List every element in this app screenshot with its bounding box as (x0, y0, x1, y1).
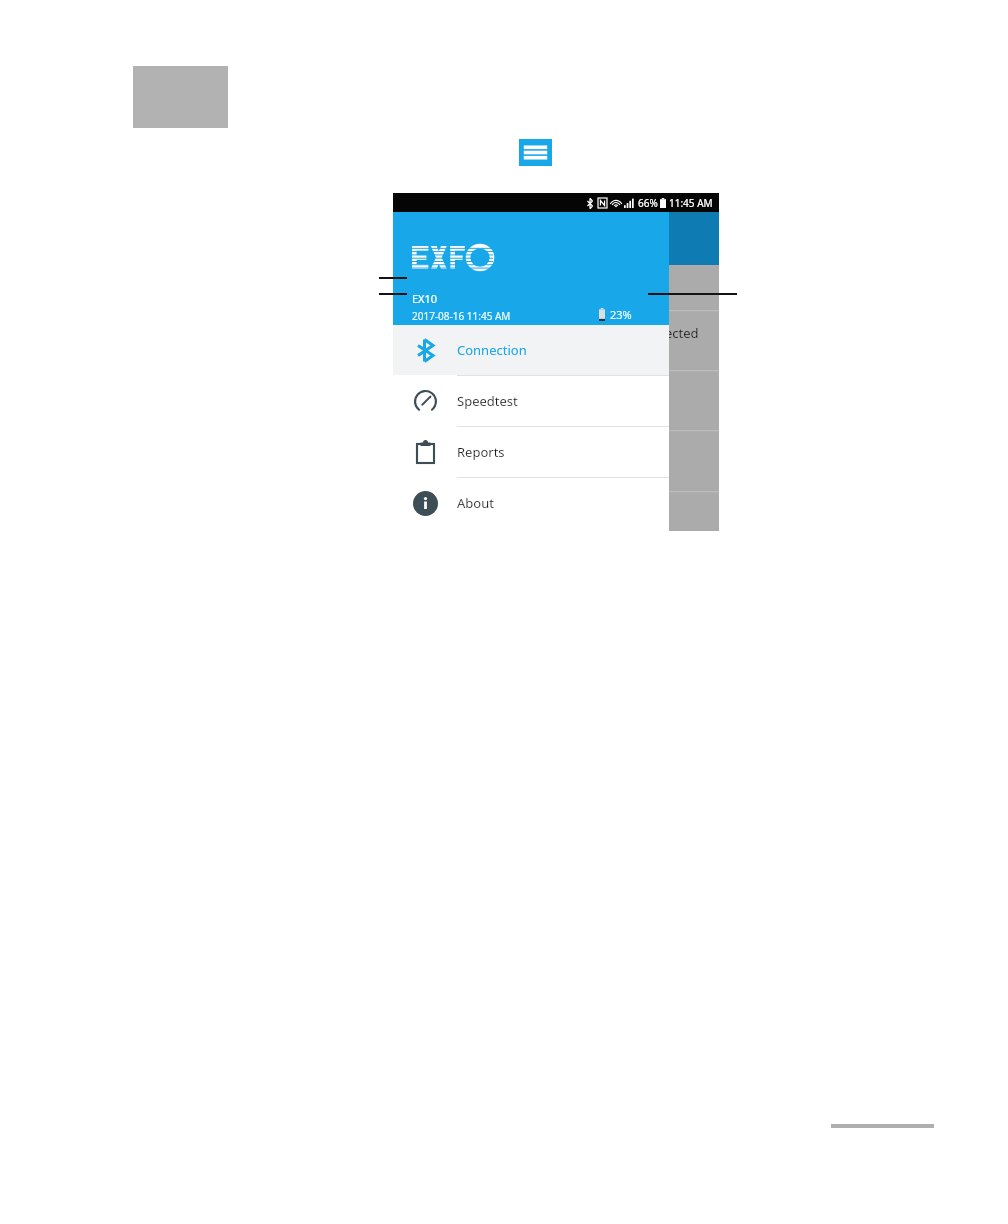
staticText: 11:45 AM (669, 196, 713, 210)
button[interactable]: Connection (393, 325, 669, 375)
staticText: Speedtest (457, 392, 518, 410)
staticText: 2017-08-16 11:45 AM (412, 309, 511, 323)
button[interactable]: Reports (393, 427, 669, 477)
staticText: ected (665, 324, 699, 342)
button[interactable]: About (393, 478, 669, 528)
staticText: EX10 (412, 291, 438, 306)
staticText: About (457, 494, 494, 512)
button[interactable]: Open navigation menu (519, 139, 552, 166)
staticText: 66% (638, 196, 658, 210)
staticText: Reports (457, 443, 505, 461)
staticText: Connection (457, 341, 527, 359)
button[interactable]: Speedtest (393, 376, 669, 426)
staticText: 23% (610, 307, 632, 322)
